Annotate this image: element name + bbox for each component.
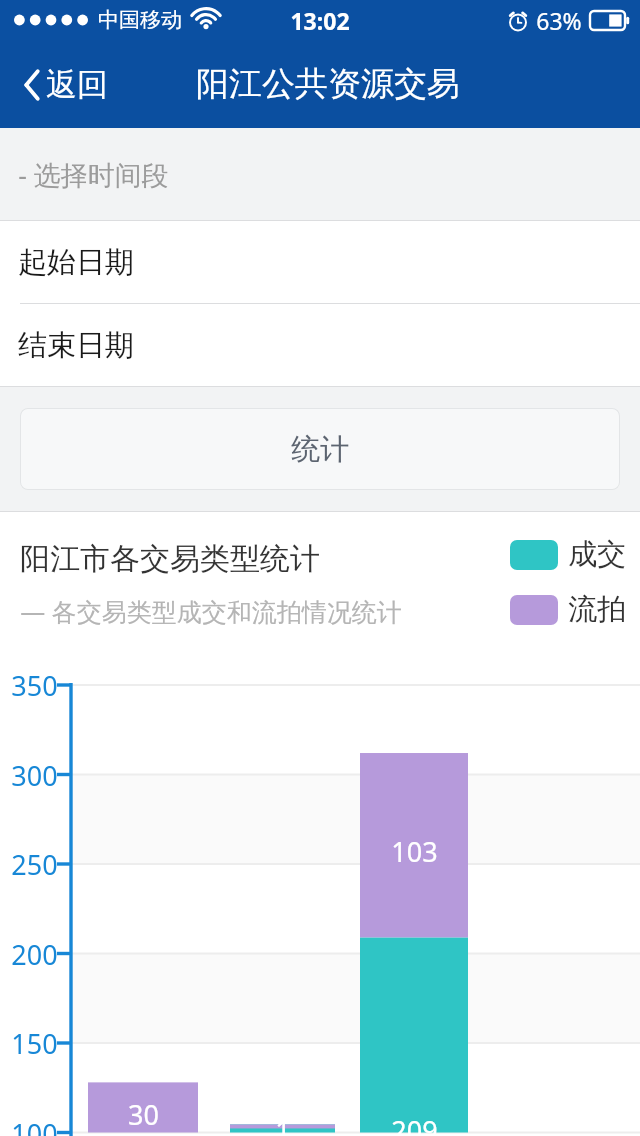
button[interactable]: 返回 bbox=[14, 57, 114, 112]
staticText: — 各交易类型成交和流拍情况统计 bbox=[20, 594, 402, 628]
staticText: 1 bbox=[275, 1112, 291, 1136]
staticText: 63% bbox=[536, 5, 582, 36]
button[interactable]: 起始日期 bbox=[0, 221, 640, 303]
staticText: 150 bbox=[11, 1025, 58, 1062]
staticText: 209 bbox=[391, 1112, 438, 1136]
staticText: 250 bbox=[11, 846, 58, 883]
staticText: 100 bbox=[11, 1115, 58, 1136]
staticText: 统计 bbox=[291, 431, 349, 468]
staticText: 结束日期 bbox=[18, 327, 134, 364]
staticText: 成交 bbox=[568, 536, 626, 573]
button[interactable]: 结束日期 bbox=[0, 304, 640, 386]
staticText: 103 bbox=[391, 833, 438, 870]
staticText: 13:02 bbox=[290, 5, 350, 36]
staticText: 返回 bbox=[46, 65, 108, 104]
staticText: 中国移动 bbox=[98, 7, 182, 33]
staticText: 起始日期 bbox=[18, 244, 134, 281]
staticText: 阳江公共资源交易 bbox=[196, 63, 460, 105]
button[interactable]: 统计 bbox=[20, 408, 620, 490]
staticText: 30 bbox=[128, 1096, 159, 1133]
staticText: - 选择时间段 bbox=[18, 156, 169, 193]
staticText: 300 bbox=[11, 757, 58, 794]
staticText: 350 bbox=[11, 667, 58, 704]
staticText: 阳江市各交易类型统计 bbox=[20, 540, 320, 578]
staticText: 200 bbox=[11, 936, 58, 973]
staticText: 流拍 bbox=[568, 591, 626, 628]
